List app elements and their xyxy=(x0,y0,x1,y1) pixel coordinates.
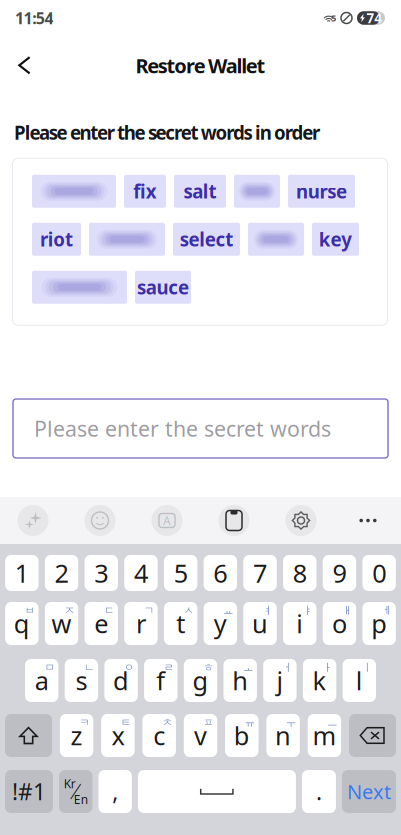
button[interactable]: w xyxy=(45,602,78,645)
button[interactable]: v xyxy=(184,714,217,757)
staticText: t xyxy=(176,607,185,640)
staticText: ㅠ xyxy=(244,716,255,729)
staticText: A xyxy=(163,512,171,528)
button[interactable]: 2 xyxy=(45,555,78,591)
staticText: ㅔ xyxy=(382,604,393,617)
button[interactable]: Delete xyxy=(349,714,396,757)
staticText: fix xyxy=(133,179,157,204)
button[interactable]: Translate xyxy=(150,503,184,537)
button[interactable]: . xyxy=(302,770,336,813)
staticText: ㅁ xyxy=(44,661,55,674)
button[interactable]: 7 xyxy=(243,555,277,591)
button[interactable]: m xyxy=(308,714,341,757)
button[interactable]: Next xyxy=(342,770,396,813)
button[interactable]: Space xyxy=(138,770,296,813)
staticText: Restore Wallet xyxy=(135,52,265,79)
button[interactable]: h xyxy=(223,659,257,702)
button[interactable]: 1 xyxy=(5,555,39,591)
button[interactable]: AI assist xyxy=(16,503,50,537)
button[interactable]: 9 xyxy=(323,555,356,591)
staticText: r xyxy=(136,607,146,640)
staticText: ㅕ xyxy=(263,604,274,617)
button[interactable]: p xyxy=(362,602,396,645)
button[interactable]: d xyxy=(104,659,138,702)
staticText: i xyxy=(296,607,303,640)
button[interactable]: k xyxy=(303,659,336,702)
button[interactable]: , xyxy=(98,770,132,813)
button[interactable]: salt xyxy=(174,175,226,208)
button[interactable]: a xyxy=(25,659,58,702)
staticText: ㄷ xyxy=(104,604,115,617)
staticText: 9 xyxy=(332,556,346,590)
button[interactable]: fix xyxy=(124,175,166,208)
button[interactable]: nurse xyxy=(288,175,355,208)
staticText: 7 xyxy=(253,556,267,590)
button[interactable]: Back xyxy=(5,45,44,86)
button[interactable]: 0 xyxy=(362,555,396,591)
staticText: key xyxy=(319,227,352,252)
staticText: g xyxy=(192,664,208,697)
button[interactable]: j xyxy=(263,659,297,702)
button[interactable]: s xyxy=(65,659,98,702)
button[interactable]: c xyxy=(142,714,176,757)
staticText: a xyxy=(35,664,49,697)
staticText: ㅋ xyxy=(79,716,90,729)
button[interactable] xyxy=(32,271,127,304)
staticText: nurse xyxy=(296,179,347,204)
button[interactable]: z xyxy=(60,714,93,757)
staticText: sauce xyxy=(137,275,189,300)
button[interactable] xyxy=(32,175,116,208)
staticText: ㅅ xyxy=(183,604,194,617)
button[interactable]: i xyxy=(283,602,316,645)
button[interactable]: e xyxy=(85,602,118,645)
button[interactable]: sauce xyxy=(135,271,191,304)
button[interactable]: riot xyxy=(32,223,81,256)
button[interactable]: 3 xyxy=(85,555,118,591)
button[interactable]: n xyxy=(266,714,300,757)
staticText: salt xyxy=(183,179,216,204)
button[interactable]: select xyxy=(173,223,240,256)
staticText: o xyxy=(332,607,347,640)
button[interactable] xyxy=(234,175,280,208)
staticText: s xyxy=(75,664,87,697)
button[interactable]: b xyxy=(225,714,258,757)
staticText: w xyxy=(52,607,72,640)
staticText: ㅏ xyxy=(322,661,333,674)
button[interactable]: Keyboard settings xyxy=(284,503,318,537)
staticText: x xyxy=(111,719,124,752)
button[interactable]: !#1 xyxy=(5,770,53,813)
button[interactable]: l xyxy=(343,659,376,702)
button[interactable]: More options xyxy=(351,503,385,537)
button[interactable]: Switch language xyxy=(59,770,92,813)
button[interactable]: 6 xyxy=(204,555,237,591)
button[interactable]: y xyxy=(204,602,237,645)
staticText: ㅂ xyxy=(25,604,36,617)
button[interactable]: 4 xyxy=(124,555,158,591)
button[interactable]: t xyxy=(164,602,197,645)
staticText: c xyxy=(153,719,165,752)
button[interactable]: Clipboard xyxy=(217,503,251,537)
button[interactable]: o xyxy=(323,602,356,645)
staticText: ㅎ xyxy=(203,661,214,674)
staticText: l xyxy=(356,664,363,697)
button[interactable]: u xyxy=(243,602,277,645)
staticText: ㅇ xyxy=(124,661,135,674)
button[interactable]: g xyxy=(184,659,217,702)
button[interactable]: q xyxy=(5,602,39,645)
button[interactable]: Emoji xyxy=(83,503,117,537)
button[interactable]: r xyxy=(124,602,158,645)
staticText: 0 xyxy=(372,556,386,590)
button[interactable]: Shift xyxy=(5,714,52,757)
button[interactable]: f xyxy=(144,659,177,702)
button[interactable] xyxy=(89,223,165,256)
button[interactable] xyxy=(248,223,304,256)
button[interactable]: 8 xyxy=(283,555,316,591)
button[interactable]: 5 xyxy=(164,555,197,591)
staticText: . xyxy=(316,776,322,806)
staticText: k xyxy=(313,664,327,697)
button[interactable]: key xyxy=(312,223,359,256)
staticText: 5 xyxy=(174,556,188,590)
button[interactable]: x xyxy=(101,714,135,757)
staticText: En xyxy=(74,791,88,807)
staticText: ㅡ xyxy=(327,716,338,729)
